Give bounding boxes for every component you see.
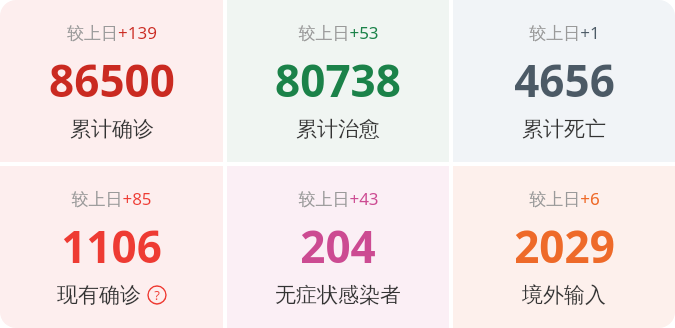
button[interactable]: 较上日+139 (0, 0, 223, 162)
staticText: 无症状感染者 (275, 282, 401, 308)
button[interactable]: 较上日+85 (0, 166, 223, 328)
staticText: 80738 (275, 50, 401, 110)
staticText: 境外输入 (522, 282, 606, 308)
button[interactable]: 较上日+1 (453, 0, 675, 162)
staticText: 累计确诊 (70, 116, 154, 142)
staticText: 较上日+1 (529, 21, 600, 44)
staticText: 4656 (514, 50, 615, 110)
button[interactable]: 较上日+53 (227, 0, 449, 162)
staticText: 现有确诊 (57, 282, 141, 308)
staticText: 2029 (514, 216, 615, 276)
staticText: 1106 (61, 216, 162, 276)
staticText: 较上日+85 (71, 187, 152, 210)
staticText: 累计死亡 (522, 116, 606, 142)
staticText: ? (154, 286, 160, 304)
button[interactable]: 帮助说明 (147, 285, 167, 305)
staticText: 较上日+43 (298, 187, 379, 210)
staticText: 较上日+6 (529, 187, 600, 210)
staticText: 累计治愈 (296, 116, 380, 142)
button[interactable]: 较上日+43 (227, 166, 449, 328)
staticText: 较上日+139 (67, 21, 157, 44)
button[interactable]: 较上日+6 (453, 166, 675, 328)
staticText: 204 (300, 216, 376, 276)
staticText: 较上日+53 (298, 21, 379, 44)
staticText: 86500 (49, 50, 175, 110)
